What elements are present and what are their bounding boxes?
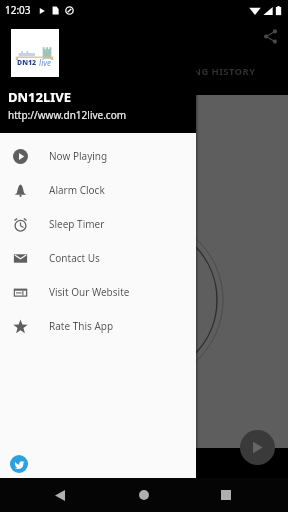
button[interactable]: Home (127, 478, 161, 512)
staticText: Visit Our Website (49, 285, 130, 299)
button[interactable]: Play (240, 430, 275, 465)
button[interactable]: Contact Us (0, 241, 196, 275)
button[interactable]: Sleep Timer (0, 207, 196, 241)
staticText: Alarm Clock (49, 183, 105, 197)
button[interactable]: Back (43, 478, 77, 512)
button[interactable]: Share (262, 28, 279, 45)
button[interactable]: Alarm Clock (0, 173, 196, 207)
staticText: NOW PLAYING HISTORY (136, 65, 256, 78)
staticText: DN12LIVE (8, 88, 72, 106)
staticText: live (37, 57, 51, 68)
staticText: Sleep Timer (49, 217, 105, 231)
staticText: 12:03 (5, 3, 31, 17)
button[interactable]: Recents (209, 478, 243, 512)
staticText: DN12 (17, 58, 37, 68)
staticText: Contact Us (49, 251, 100, 265)
staticText: Now Playing (49, 149, 108, 163)
button[interactable]: Twitter (10, 455, 28, 473)
button[interactable]: Now Playing (0, 139, 196, 173)
button[interactable]: Rate This App (0, 309, 196, 343)
button[interactable]: Visit Our Website (0, 275, 196, 309)
staticText: Rate This App (49, 319, 114, 333)
staticText: http://www.dn12live.com (8, 108, 127, 122)
